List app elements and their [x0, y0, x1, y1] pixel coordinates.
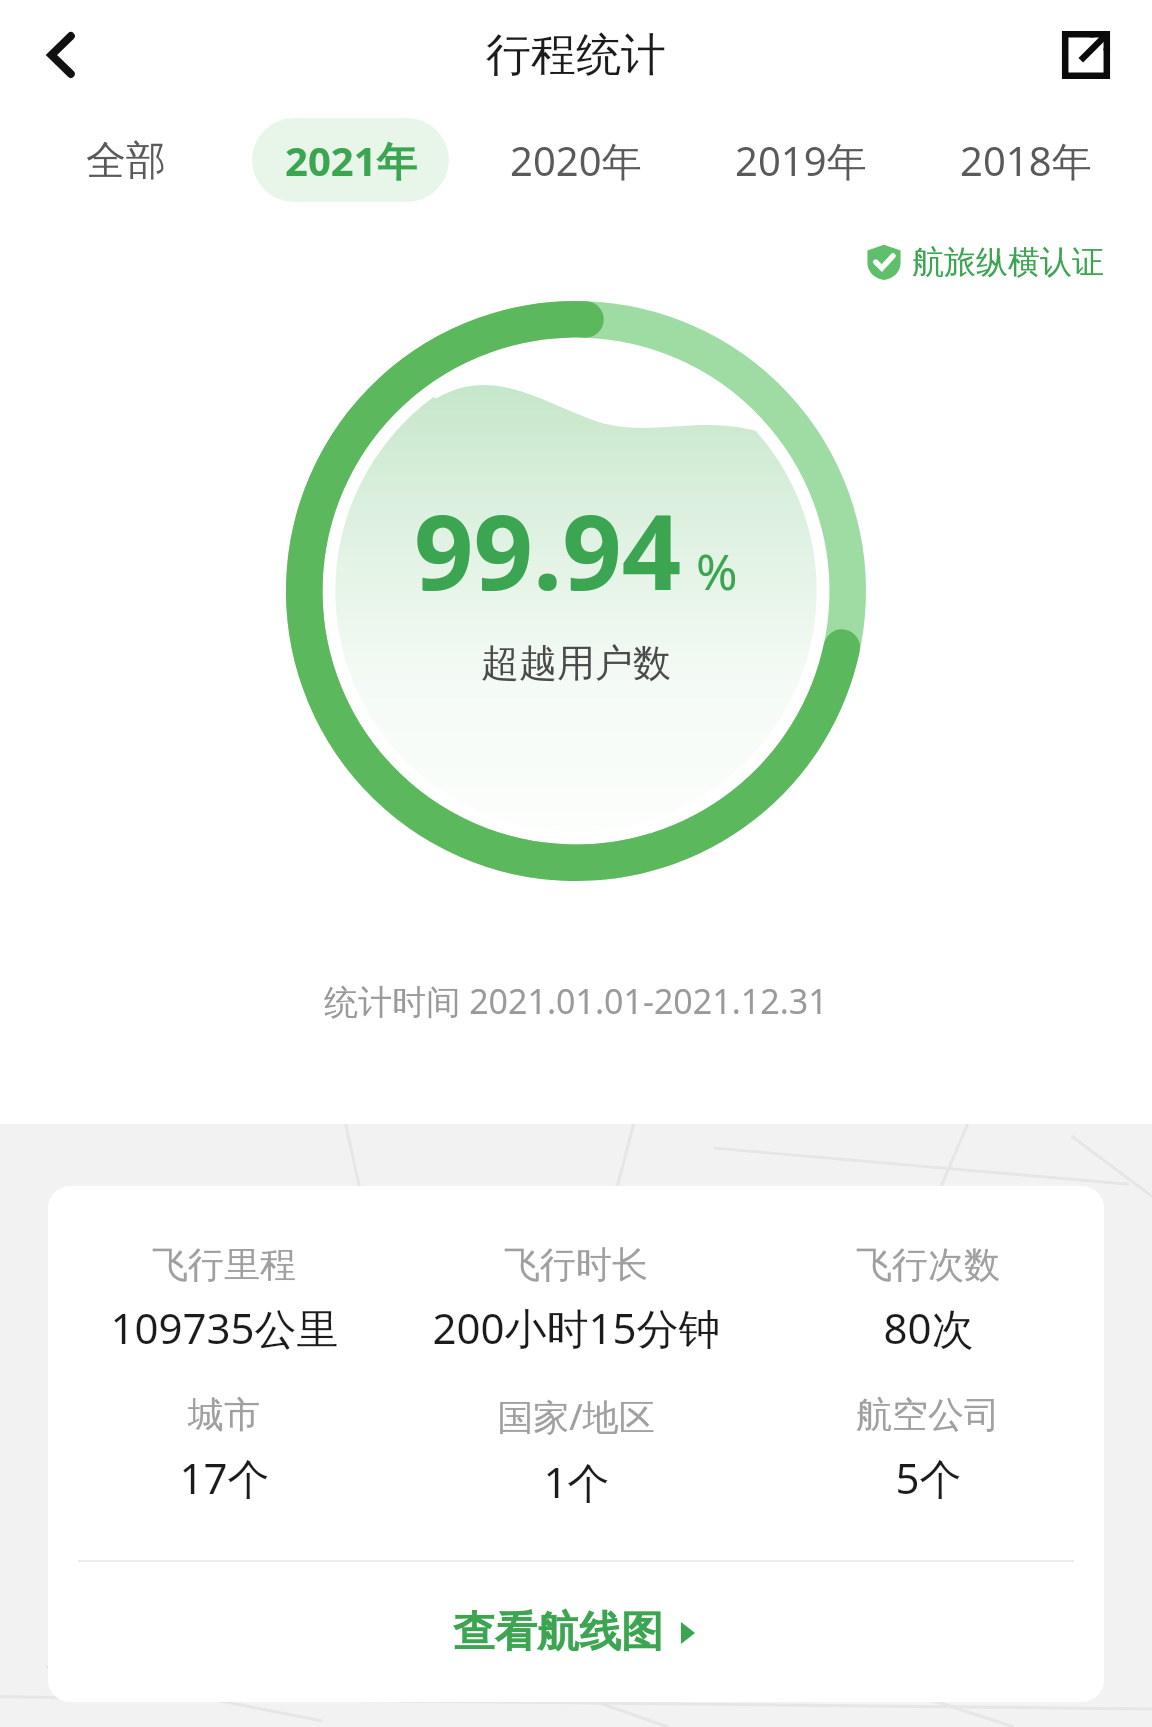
- button[interactable]: 2018年: [927, 118, 1124, 202]
- button[interactable]: 国家/地区: [400, 1392, 752, 1510]
- staticText: 109735公里: [110, 1299, 339, 1356]
- button[interactable]: 飞行里程: [48, 1242, 400, 1356]
- staticText: 1个: [543, 1453, 610, 1510]
- staticText: 超越用户数: [481, 639, 671, 687]
- staticText: 飞行时长: [504, 1242, 648, 1287]
- staticText: 行程统计: [486, 27, 666, 84]
- staticText: 2019年: [735, 133, 867, 188]
- button[interactable]: 2020年: [477, 118, 674, 202]
- button[interactable]: 航空公司: [752, 1392, 1104, 1506]
- staticText: 2018年: [960, 133, 1092, 188]
- staticText: 200小时15分钟: [432, 1299, 721, 1356]
- staticText: 99.94: [414, 479, 682, 621]
- staticText: 航旅纵横认证: [912, 242, 1104, 282]
- button[interactable]: 查看航线图: [48, 1562, 1104, 1702]
- button[interactable]: 2019年: [702, 118, 899, 202]
- staticText: 5个: [895, 1449, 962, 1506]
- staticText: 飞行里程: [152, 1242, 296, 1287]
- staticText: 飞行次数: [856, 1242, 1000, 1287]
- button[interactable]: Share: [1042, 11, 1130, 99]
- staticText: 2021年: [285, 133, 417, 188]
- staticText: 城市: [188, 1392, 260, 1437]
- button[interactable]: Back: [18, 11, 106, 99]
- button[interactable]: 飞行时长: [400, 1242, 752, 1356]
- staticText: 统计时间 2021.01.01-2021.12.31: [0, 978, 1152, 1024]
- staticText: 17个: [179, 1449, 270, 1506]
- staticText: 2020年: [510, 133, 642, 188]
- staticText: 查看航线图: [453, 1606, 663, 1659]
- button[interactable]: 航旅纵横认证: [866, 242, 1104, 282]
- button[interactable]: 2021年: [252, 118, 449, 202]
- staticText: 航空公司: [856, 1392, 1000, 1437]
- staticText: 80次: [883, 1299, 974, 1356]
- staticText: 全部: [86, 135, 166, 185]
- button[interactable]: 全部: [28, 118, 224, 202]
- button[interactable]: 城市: [48, 1392, 400, 1506]
- staticText: %: [696, 537, 738, 605]
- button[interactable]: 飞行次数: [752, 1242, 1104, 1356]
- staticText: 国家/地区: [497, 1392, 655, 1441]
